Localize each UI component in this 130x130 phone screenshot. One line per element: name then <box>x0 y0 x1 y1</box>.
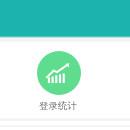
other: 登录统计 <box>37 51 81 95</box>
staticText: 登录统计 <box>39 100 77 112</box>
button[interactable]: 登录统计 <box>30 51 86 112</box>
